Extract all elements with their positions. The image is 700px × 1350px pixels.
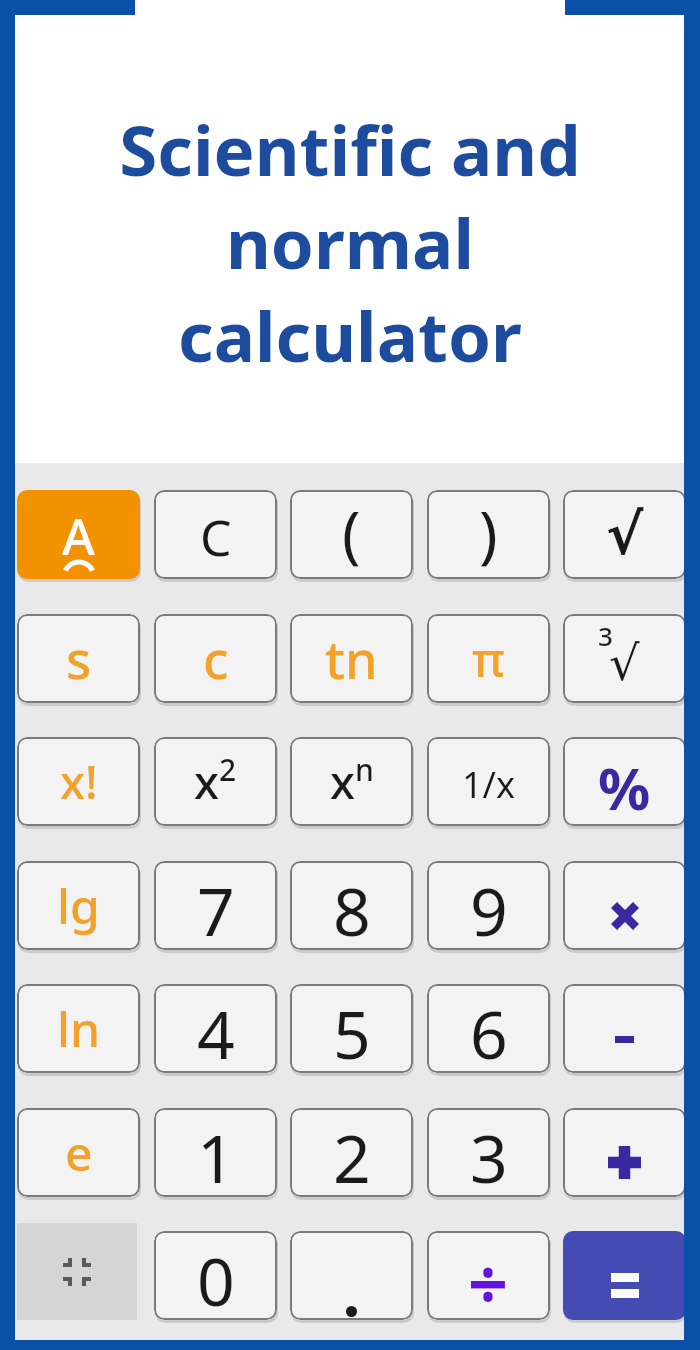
staticText: c	[203, 623, 229, 694]
staticText: C	[200, 503, 232, 571]
staticText: 4	[197, 988, 235, 1073]
button[interactable]	[563, 1108, 686, 1197]
staticText: 9	[470, 865, 508, 950]
button[interactable]: 0	[154, 1231, 277, 1320]
button[interactable]: lg	[17, 861, 140, 950]
staticText: s	[66, 623, 92, 694]
staticText: (	[342, 490, 361, 574]
staticText: A	[62, 502, 95, 570]
button[interactable]	[563, 861, 686, 950]
staticText: x	[330, 750, 355, 813]
button[interactable]: ln	[17, 984, 140, 1073]
button[interactable]: x	[290, 737, 413, 826]
button[interactable]: 5	[290, 984, 413, 1073]
button[interactable]: √	[563, 490, 686, 579]
button[interactable]: 1/x	[427, 737, 550, 826]
button[interactable]: 1	[154, 1108, 277, 1197]
button[interactable]: 7	[154, 861, 277, 950]
button[interactable]: A	[17, 490, 140, 579]
staticText: 6	[470, 988, 508, 1073]
button[interactable]: s	[17, 614, 140, 703]
staticText: 3	[470, 1112, 508, 1197]
button[interactable]: √	[563, 614, 686, 703]
button[interactable]: )	[427, 490, 550, 579]
staticText: 0	[197, 1235, 235, 1320]
staticText: ln	[57, 996, 101, 1061]
button[interactable]: 9	[427, 861, 550, 950]
button[interactable]	[563, 1231, 686, 1320]
staticText: 2	[333, 1112, 371, 1197]
button[interactable]: π	[427, 614, 550, 703]
staticText: 5	[333, 988, 371, 1073]
staticText: %	[598, 748, 651, 826]
button[interactable]	[17, 1223, 137, 1320]
staticText: x	[194, 750, 219, 813]
button[interactable]: 2	[290, 1108, 413, 1197]
button[interactable]: 8	[290, 861, 413, 950]
staticText: tn	[325, 623, 378, 694]
button[interactable]: c	[154, 614, 277, 703]
staticText: x!	[60, 750, 98, 813]
staticText: √	[609, 635, 640, 691]
button[interactable]: x!	[17, 737, 140, 826]
staticText: π	[472, 626, 505, 691]
staticText: Scientific and normal calculator	[0, 102, 700, 382]
staticText: 3	[598, 618, 613, 653]
staticText: lg	[57, 873, 100, 938]
button[interactable]: 3	[427, 1108, 550, 1197]
staticText: )	[479, 490, 498, 574]
button[interactable]: x	[154, 737, 277, 826]
button[interactable]	[290, 1231, 413, 1320]
staticText: 8	[333, 865, 371, 950]
button[interactable]: 6	[427, 984, 550, 1073]
button[interactable]: e	[17, 1108, 140, 1197]
staticText: 1/x	[462, 760, 516, 809]
button[interactable]: 4	[154, 984, 277, 1073]
staticText: 7	[197, 865, 235, 950]
button[interactable]: C	[154, 490, 277, 579]
button[interactable]: tn	[290, 614, 413, 703]
button[interactable]: (	[290, 490, 413, 579]
staticText: ÷	[468, 1235, 509, 1320]
button[interactable]: ÷	[427, 1231, 550, 1320]
button[interactable]	[563, 984, 686, 1073]
staticText: 2	[219, 749, 237, 790]
staticText: e	[65, 1120, 93, 1185]
staticText: √	[606, 502, 644, 567]
staticText: n	[355, 749, 374, 790]
staticText: 1	[197, 1112, 235, 1197]
button[interactable]: %	[563, 737, 686, 826]
